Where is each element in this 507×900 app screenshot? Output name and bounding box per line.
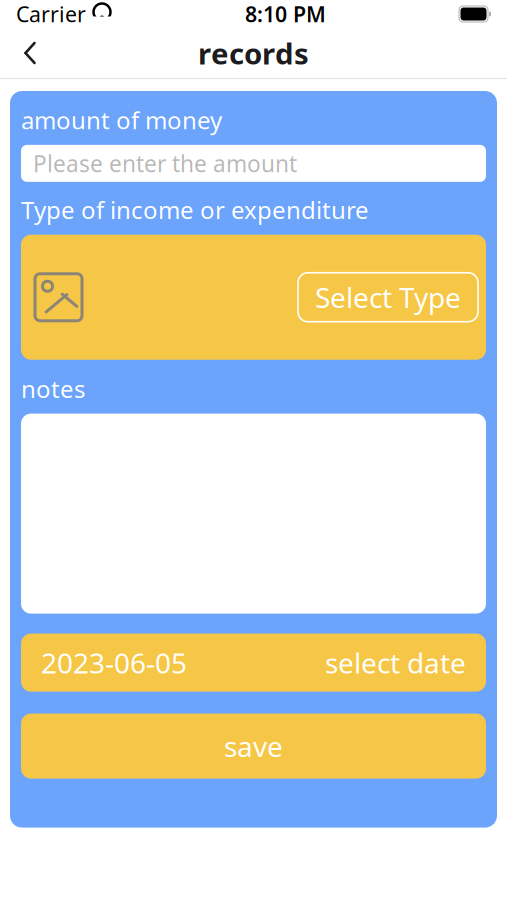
staticText: Select Type xyxy=(315,279,461,316)
staticText: notes xyxy=(21,373,85,405)
button[interactable]: 2023-06-05 xyxy=(21,634,486,692)
staticText: 8:10 PM xyxy=(245,0,326,28)
staticText: select date xyxy=(325,644,466,681)
button[interactable]: Select Type xyxy=(298,273,478,322)
button[interactable]: Back xyxy=(8,31,52,75)
staticText: save xyxy=(224,727,283,765)
staticText: Carrier xyxy=(16,0,86,28)
staticText: 2023-06-05 xyxy=(41,644,187,681)
staticText: Please enter the amount xyxy=(33,148,297,178)
staticText: amount of money xyxy=(21,104,222,136)
button[interactable]: save xyxy=(21,714,486,779)
staticText: Type of income or expenditure xyxy=(21,194,369,226)
staticText: records xyxy=(198,33,309,72)
